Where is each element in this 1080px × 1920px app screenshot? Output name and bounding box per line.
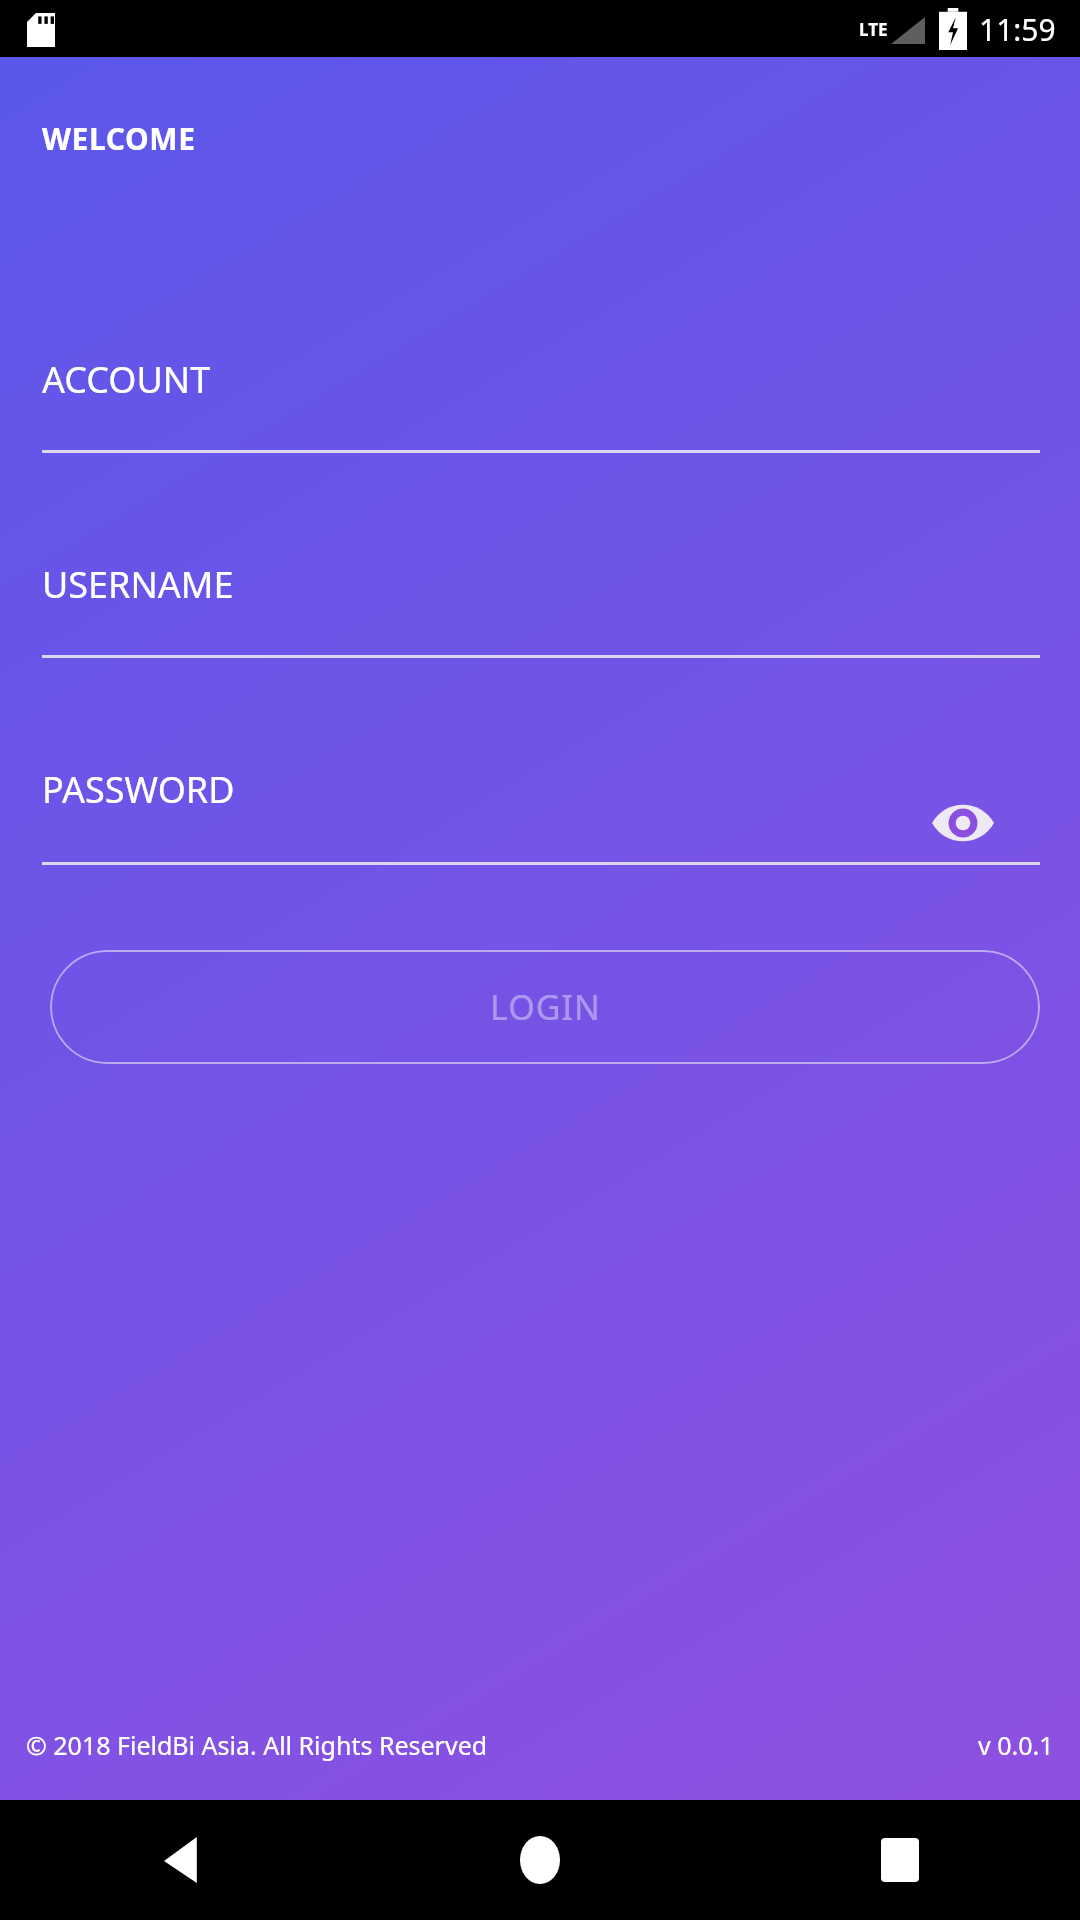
staticText: ACCOUNT (42, 355, 211, 404)
staticText: v 0.0.1 (978, 1728, 1054, 1762)
staticText: LOGIN (490, 984, 601, 1030)
staticText: USERNAME (42, 560, 234, 609)
staticText: WELCOME (42, 118, 196, 159)
staticText: LTE (859, 18, 888, 41)
staticText: PASSWORD (42, 765, 235, 814)
button[interactable]: Home (360, 1800, 720, 1920)
button[interactable]: Recent apps (720, 1800, 1080, 1920)
button[interactable]: LOGIN (50, 950, 1040, 1064)
button[interactable]: Show password (915, 775, 1011, 871)
staticText: 11:59 (979, 9, 1056, 50)
staticText: © 2018 FieldBi Asia. All Rights Reserved (26, 1728, 488, 1762)
button[interactable]: Back (0, 1800, 360, 1920)
